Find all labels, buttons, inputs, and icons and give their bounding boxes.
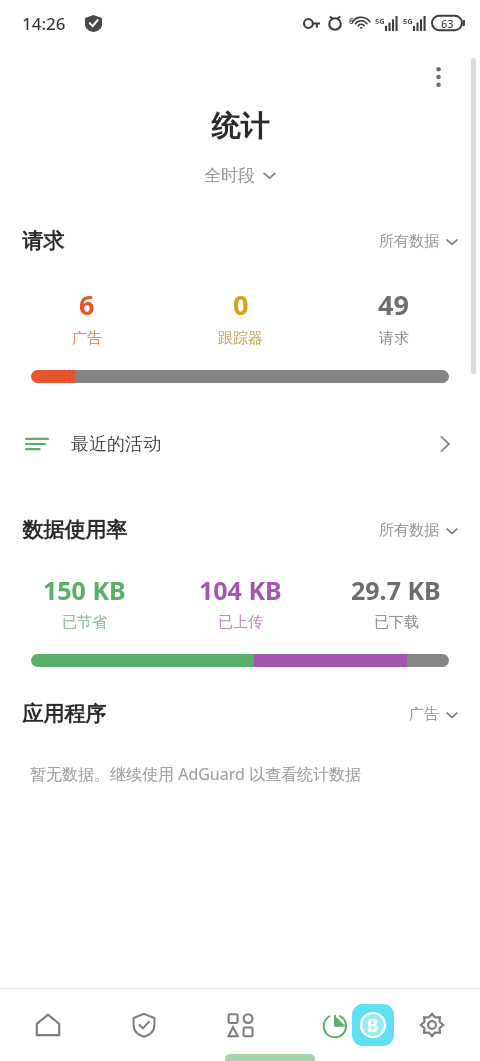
staticText: 5G <box>375 16 385 26</box>
staticText: B <box>367 1014 379 1037</box>
staticText: 全时段 <box>204 165 255 186</box>
staticText: 跟踪器 <box>218 329 263 348</box>
button[interactable]: More options <box>422 61 454 93</box>
staticText: 5G <box>403 16 413 26</box>
button[interactable]: 29.7 KB <box>318 573 474 632</box>
staticText: 150 KB <box>43 573 126 607</box>
staticText: 请求 <box>379 329 409 348</box>
staticText: 数据使用率 <box>22 517 127 543</box>
button[interactable]: 所有数据 <box>379 232 458 251</box>
staticText: 49 <box>378 286 409 323</box>
button[interactable]: 150 KB <box>6 573 162 632</box>
button[interactable]: Floating assistant <box>352 1004 394 1046</box>
button[interactable]: 所有数据 <box>379 521 458 540</box>
staticText: 所有数据 <box>379 521 439 540</box>
button[interactable]: 0 <box>164 286 317 348</box>
button[interactable]: 104 KB <box>162 573 318 632</box>
button[interactable]: Home <box>0 989 96 1061</box>
staticText: 14:26 <box>22 12 66 35</box>
button[interactable]: 广告 <box>409 705 458 724</box>
button[interactable]: 6 <box>10 286 164 348</box>
button[interactable]: Statistics <box>288 989 384 1061</box>
staticText: 暂无数据。继续使用 AdGuard 以查看统计数据 <box>30 763 480 785</box>
staticText: 63 <box>441 16 454 31</box>
staticText: 已上传 <box>218 613 263 632</box>
button[interactable]: Apps <box>192 989 288 1061</box>
staticText: 6 <box>79 286 95 323</box>
staticText: 应用程序 <box>22 701 106 727</box>
staticText: 请求 <box>22 228 64 254</box>
button[interactable]: 全时段 <box>0 165 480 186</box>
staticText: 104 KB <box>199 573 282 607</box>
staticText: 统计 <box>0 108 480 145</box>
button[interactable]: Settings <box>384 989 480 1061</box>
button[interactable]: 49 <box>317 286 470 348</box>
staticText: 0 <box>233 286 249 323</box>
staticText: 已节省 <box>62 613 107 632</box>
staticText: 6 <box>349 15 354 26</box>
staticText: 29.7 KB <box>351 573 441 607</box>
button[interactable]: 最近的活动 <box>0 419 480 469</box>
button[interactable]: Protection <box>96 989 192 1061</box>
staticText: 广告 <box>72 329 102 348</box>
staticText: 已下载 <box>374 613 419 632</box>
staticText: 广告 <box>409 705 439 724</box>
staticText: 最近的活动 <box>71 433 161 456</box>
staticText: 所有数据 <box>379 232 439 251</box>
